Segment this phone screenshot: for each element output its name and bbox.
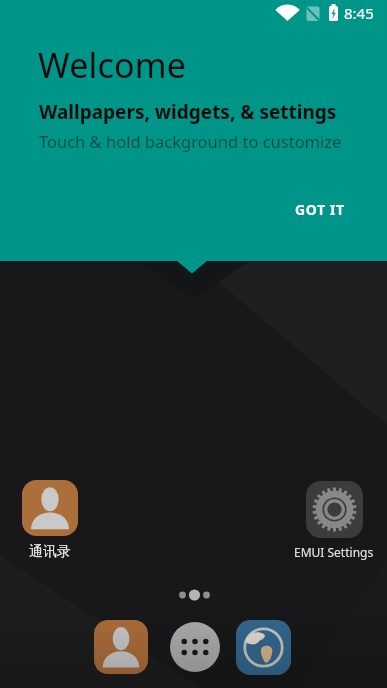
staticText: 8:45 [344,3,374,23]
staticText: 通讯录 [29,543,71,561]
button[interactable]: 通讯录 [0,543,100,561]
staticText: Touch & hold background to customize [39,130,342,152]
button[interactable] [306,481,363,538]
button[interactable]: EMUI Settings [264,544,387,560]
button[interactable] [22,480,78,536]
staticText: EMUI Settings [294,544,374,560]
button[interactable] [236,620,291,675]
button[interactable] [170,622,220,672]
staticText: Wallpapers, widgets, & settings [39,99,337,125]
staticText: GOT IT [295,200,345,219]
staticText: Welcome [38,42,187,88]
button[interactable]: GOT IT [280,191,360,227]
button[interactable] [94,620,148,674]
